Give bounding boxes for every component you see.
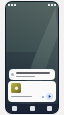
button[interactable] bbox=[9, 69, 55, 80]
button[interactable]: Previous bbox=[8, 81, 56, 102]
button[interactable]: Play bbox=[46, 93, 53, 100]
button[interactable]: App 2 bbox=[47, 106, 52, 111]
button[interactable]: App 1 bbox=[30, 106, 35, 111]
button[interactable]: App 0 bbox=[12, 106, 17, 111]
